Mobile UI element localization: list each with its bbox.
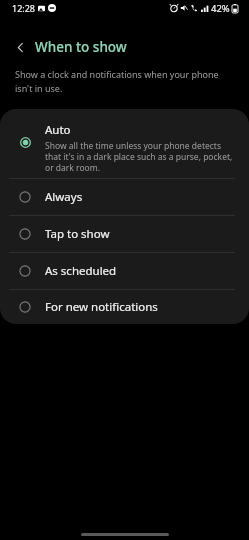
staticText: When to show — [35, 38, 127, 56]
button[interactable]: Auto — [0, 109, 249, 178]
button[interactable]: For new notifications — [0, 289, 249, 324]
button[interactable]: Always — [0, 178, 249, 215]
button[interactable]: As scheduled — [0, 252, 249, 289]
staticText: For new notifications — [45, 299, 158, 315]
staticText: 12:28 — [12, 2, 36, 14]
button[interactable]: Tap to show — [0, 215, 249, 252]
staticText: 42% — [211, 2, 230, 15]
staticText: Tap to show — [45, 226, 110, 242]
button[interactable]: Back — [12, 39, 28, 55]
staticText: As scheduled — [45, 263, 117, 279]
staticText: Show all the time unless your phone dete… — [45, 140, 235, 173]
staticText: Show a clock and notifications when your… — [15, 68, 225, 95]
staticText: Auto — [45, 122, 71, 138]
staticText: Always — [45, 189, 83, 205]
